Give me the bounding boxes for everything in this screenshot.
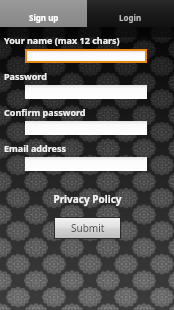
- button[interactable]: Login: [87, 0, 174, 27]
- staticText: Login: [119, 12, 142, 23]
- staticText: Submit: [71, 221, 105, 235]
- button[interactable]: Submit: [55, 218, 120, 238]
- button[interactable]: Email address: [25, 157, 147, 171]
- button[interactable]: Password: [25, 85, 147, 99]
- staticText: Password: [4, 70, 47, 82]
- button[interactable]: Confirm password: [25, 121, 147, 135]
- staticText: Sign up: [29, 12, 59, 23]
- staticText: Privacy Policy: [53, 192, 122, 206]
- button[interactable]: Privacy Policy: [47, 190, 128, 208]
- staticText: Your name (max 12 chars): [4, 34, 120, 46]
- staticText: Email address: [4, 142, 66, 154]
- button[interactable]: Sign up: [0, 0, 87, 27]
- staticText: Confirm password: [4, 106, 86, 118]
- button[interactable]: Your name: [27, 51, 145, 61]
